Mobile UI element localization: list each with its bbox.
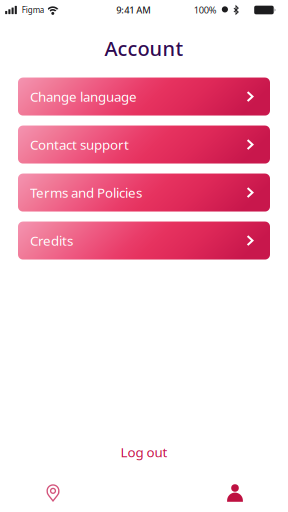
button[interactable]: Account: [207, 476, 263, 510]
staticText: Credits: [30, 232, 73, 249]
staticText: 9:41 AM: [116, 4, 151, 16]
button[interactable]: Terms and Policies: [18, 174, 270, 212]
button[interactable]: Contact support: [18, 126, 270, 164]
staticText: Contact support: [30, 136, 129, 153]
staticText: 100%: [194, 4, 217, 16]
staticText: Figma: [22, 5, 44, 15]
staticText: Change language: [30, 88, 137, 105]
staticText: Log out: [120, 443, 167, 461]
button[interactable]: Log out: [104, 436, 183, 468]
button[interactable]: Credits: [18, 222, 270, 260]
staticText: Account: [104, 35, 183, 62]
button[interactable]: Change language: [18, 78, 270, 116]
staticText: Terms and Policies: [30, 184, 142, 201]
button[interactable]: Map: [25, 476, 81, 510]
